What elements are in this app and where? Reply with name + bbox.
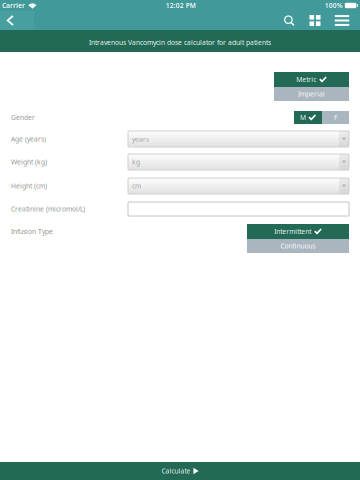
staticText: 12:02 PM [166,1,196,10]
button[interactable]: cm [128,178,349,194]
button[interactable]: Creatinine value [128,202,349,216]
staticText: Intravenous Vancomycin dose calculator f… [89,38,271,47]
staticText: F [334,113,337,122]
button[interactable]: Search [276,11,302,30]
button[interactable]: kg [128,154,349,170]
staticText: Imperial [298,90,325,98]
button[interactable]: Calculate [0,462,360,480]
staticText: 100% [325,1,343,10]
button[interactable]: F [322,111,349,124]
staticText: Infusion Type [11,227,53,236]
button[interactable]: Intermittent [247,224,349,239]
staticText: M [300,113,306,122]
button[interactable]: years [128,131,349,147]
button[interactable]: Menu [328,11,356,30]
button[interactable]: Back [0,11,20,30]
button[interactable]: Continuous [247,239,349,253]
staticText: Height (cm) [11,182,47,190]
staticText: Metric [296,75,316,84]
button[interactable]: Metric [274,72,349,87]
button[interactable]: Grid view [302,11,328,30]
staticText: Creatinine (micromol/L) [11,205,85,213]
staticText: Intermittent [274,227,311,236]
staticText: Age (years) [11,135,46,143]
staticText: Gender [11,113,35,122]
staticText: years [132,135,149,143]
staticText: Continuous [280,242,315,250]
staticText: Weight (kg) [11,158,47,166]
staticText: Calculate [161,467,190,475]
staticText: cm [132,182,141,190]
button[interactable]: M [294,111,322,124]
button[interactable]: Imperial [274,87,349,101]
staticText: Carrier [2,1,25,10]
staticText: kg [132,158,140,166]
